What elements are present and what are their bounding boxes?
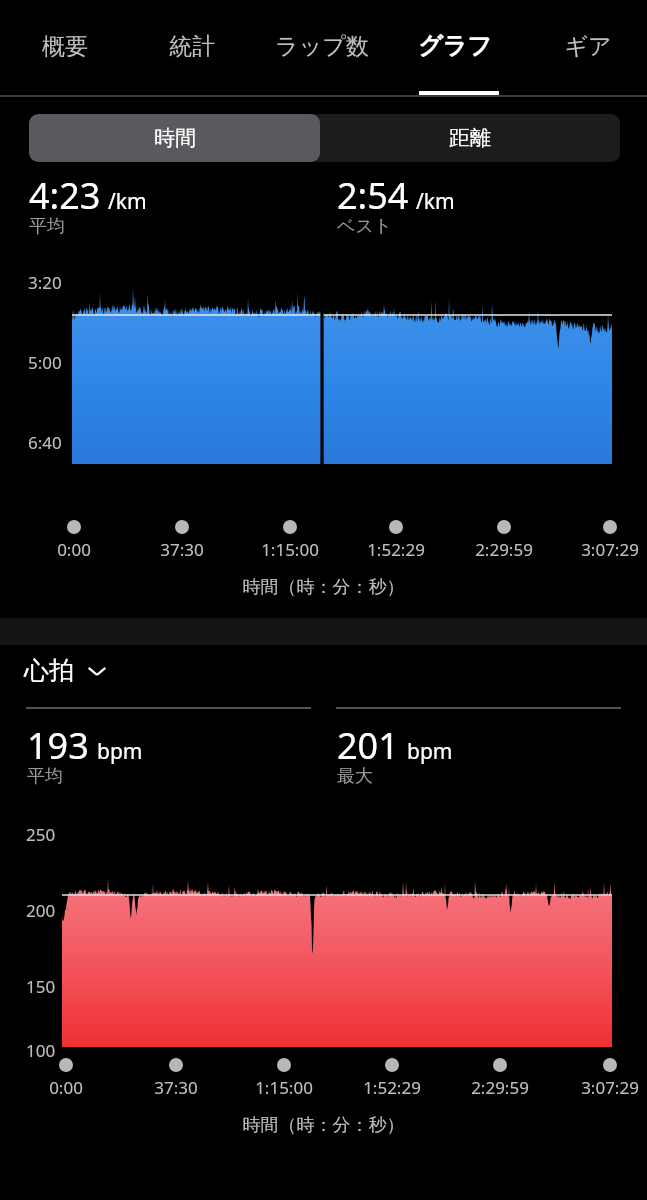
staticText: グラフ	[418, 31, 492, 61]
staticText: 2:29:59	[445, 1076, 555, 1099]
staticText: 1:15:00	[229, 1076, 339, 1099]
staticText: 37:30	[121, 1076, 231, 1099]
staticText: 時間	[154, 125, 196, 151]
button[interactable]: 心拍	[24, 655, 108, 686]
staticText: 1:52:29	[337, 1076, 447, 1099]
button[interactable]: ラップ数	[258, 0, 386, 92]
staticText: ラップ数	[275, 32, 369, 61]
button[interactable]: 統計	[128, 0, 256, 92]
button[interactable]: ギア	[524, 0, 647, 92]
staticText: 37:30	[127, 538, 237, 561]
staticText: 200	[26, 899, 56, 922]
staticText: 193	[27, 721, 89, 770]
staticText: 平均	[29, 215, 65, 238]
staticText: ベスト	[337, 215, 393, 238]
staticText: 2:29:59	[449, 538, 559, 561]
button[interactable]: 概要	[1, 0, 129, 92]
staticText: 距離	[449, 125, 491, 151]
staticText: 1:52:29	[341, 538, 451, 561]
staticText: 平均	[27, 765, 63, 788]
staticText: 時間（時：分：秒）	[0, 1114, 647, 1137]
staticText: bpm	[97, 737, 143, 766]
other: Expand heart rate	[86, 660, 108, 682]
staticText: 150	[26, 975, 56, 998]
staticText: 1:15:00	[235, 538, 345, 561]
staticText: 4:23	[29, 171, 101, 220]
staticText: 0:00	[11, 1076, 121, 1099]
staticText: 3:07:29	[555, 538, 647, 561]
staticText: 概要	[42, 32, 88, 61]
staticText: 最大	[337, 765, 373, 788]
button[interactable]: グラフ	[391, 0, 519, 92]
staticText: 3:07:29	[555, 1076, 647, 1099]
staticText: 2:54	[337, 171, 409, 220]
staticText: 250	[26, 823, 56, 846]
staticText: 100	[26, 1039, 56, 1062]
staticText: bpm	[407, 737, 453, 766]
staticText: 201	[337, 721, 399, 770]
staticText: /km	[416, 187, 455, 216]
button[interactable]: 距離	[320, 114, 620, 162]
staticText: ギア	[564, 32, 612, 61]
staticText: 3:20	[28, 271, 62, 294]
staticText: 時間（時：分：秒）	[0, 576, 647, 599]
staticText: 5:00	[28, 351, 62, 374]
staticText: 6:40	[28, 431, 62, 454]
staticText: 心拍	[24, 655, 74, 686]
staticText: 0:00	[19, 538, 129, 561]
staticText: /km	[108, 187, 147, 216]
staticText: 統計	[169, 32, 215, 61]
button[interactable]: 時間	[29, 114, 320, 162]
